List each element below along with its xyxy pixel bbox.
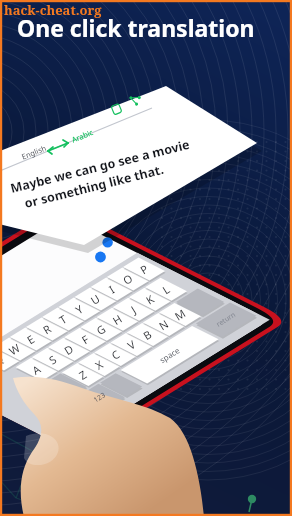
button[interactable] <box>0 0 292 516</box>
